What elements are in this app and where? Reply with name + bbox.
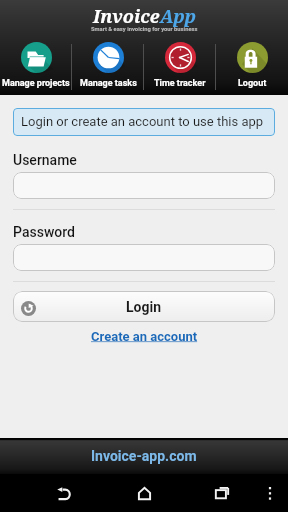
button[interactable]: Back (24, 474, 104, 512)
staticText: App (160, 4, 196, 29)
button[interactable]: Manage projects (0, 40, 72, 89)
button[interactable]: Login or create an account to use this a… (13, 108, 275, 136)
staticText: Logout (238, 78, 267, 89)
button[interactable] (13, 244, 275, 271)
staticText: Login or create an account to use this a… (21, 114, 264, 129)
button[interactable]: Time tracker (144, 40, 216, 89)
button[interactable]: Logout (216, 40, 288, 89)
staticText: Smart & easy invoicing for your business (91, 26, 198, 33)
staticText: Username (13, 152, 77, 168)
button[interactable]: Invoice-app.com (91, 448, 197, 464)
button[interactable]: Recent apps (184, 474, 260, 512)
staticText: Manage tasks (80, 78, 137, 89)
button[interactable]: Create an account (91, 329, 198, 344)
button[interactable]: More options (256, 474, 284, 512)
button[interactable] (13, 172, 275, 199)
button[interactable]: Home (104, 474, 184, 512)
button[interactable]: Manage tasks (72, 40, 144, 89)
button[interactable]: Login (13, 291, 275, 322)
staticText: Invoice (93, 4, 160, 29)
staticText: Time tracker (154, 78, 206, 89)
staticText: Password (13, 224, 76, 240)
staticText: Manage projects (2, 78, 70, 89)
staticText: Login (126, 299, 162, 315)
